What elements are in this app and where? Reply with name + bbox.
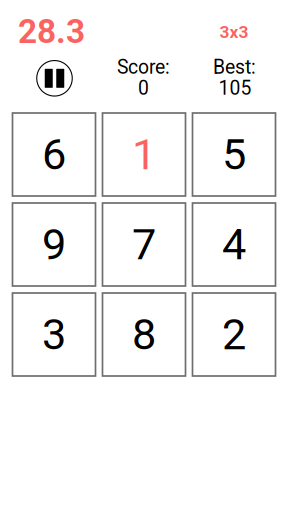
staticText: Best: <box>213 56 256 79</box>
button[interactable]: 3x3 <box>219 22 248 42</box>
button[interactable]: 3 <box>12 293 95 376</box>
staticText: 2 <box>222 309 246 360</box>
button[interactable]: Pause <box>34 58 74 98</box>
button[interactable]: 5 <box>192 113 275 196</box>
staticText: 1 <box>132 129 156 180</box>
staticText: 5 <box>222 129 246 180</box>
staticText: 3 <box>42 309 66 360</box>
button[interactable]: 1 <box>102 113 185 196</box>
staticText: 3x3 <box>219 22 248 42</box>
button[interactable]: 7 <box>102 203 185 286</box>
staticText: 8 <box>132 309 156 360</box>
staticText: 7 <box>132 219 156 270</box>
staticText: 28.3 <box>18 12 85 51</box>
button[interactable]: 8 <box>102 293 185 376</box>
button[interactable]: 2 <box>192 293 275 376</box>
staticText: Score: <box>117 56 170 79</box>
staticText: 6 <box>42 129 66 180</box>
staticText: 4 <box>222 219 246 270</box>
staticText: 0 <box>138 77 149 100</box>
staticText: 9 <box>42 219 66 270</box>
staticText: 105 <box>218 77 251 100</box>
button[interactable]: 4 <box>192 203 275 286</box>
button[interactable]: 6 <box>12 113 95 196</box>
button[interactable]: 9 <box>12 203 95 286</box>
